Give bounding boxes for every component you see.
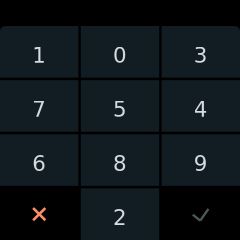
staticText: 8 xyxy=(113,151,127,176)
staticText: 0 xyxy=(113,43,127,68)
button[interactable]: Confirm xyxy=(162,188,240,240)
button[interactable]: 5 xyxy=(81,80,159,132)
button[interactable]: 8 xyxy=(81,134,159,186)
staticText: 6 xyxy=(32,151,46,176)
button[interactable]: 0 xyxy=(81,26,159,78)
button[interactable]: 3 xyxy=(162,26,240,78)
button[interactable]: Cancel xyxy=(0,188,78,240)
button[interactable]: 4 xyxy=(162,80,240,132)
button[interactable]: 1 xyxy=(0,26,78,78)
button[interactable]: 7 xyxy=(0,80,78,132)
staticText: 1 xyxy=(32,43,46,68)
button[interactable]: 9 xyxy=(162,134,240,186)
staticText: 4 xyxy=(194,97,208,122)
button[interactable]: 6 xyxy=(0,134,78,186)
staticText: 7 xyxy=(32,97,46,122)
staticText: 5 xyxy=(113,97,127,122)
staticText: 2 xyxy=(113,205,127,230)
staticText: 3 xyxy=(194,43,208,68)
button[interactable]: 2 xyxy=(81,188,159,240)
staticText: 9 xyxy=(194,151,208,176)
